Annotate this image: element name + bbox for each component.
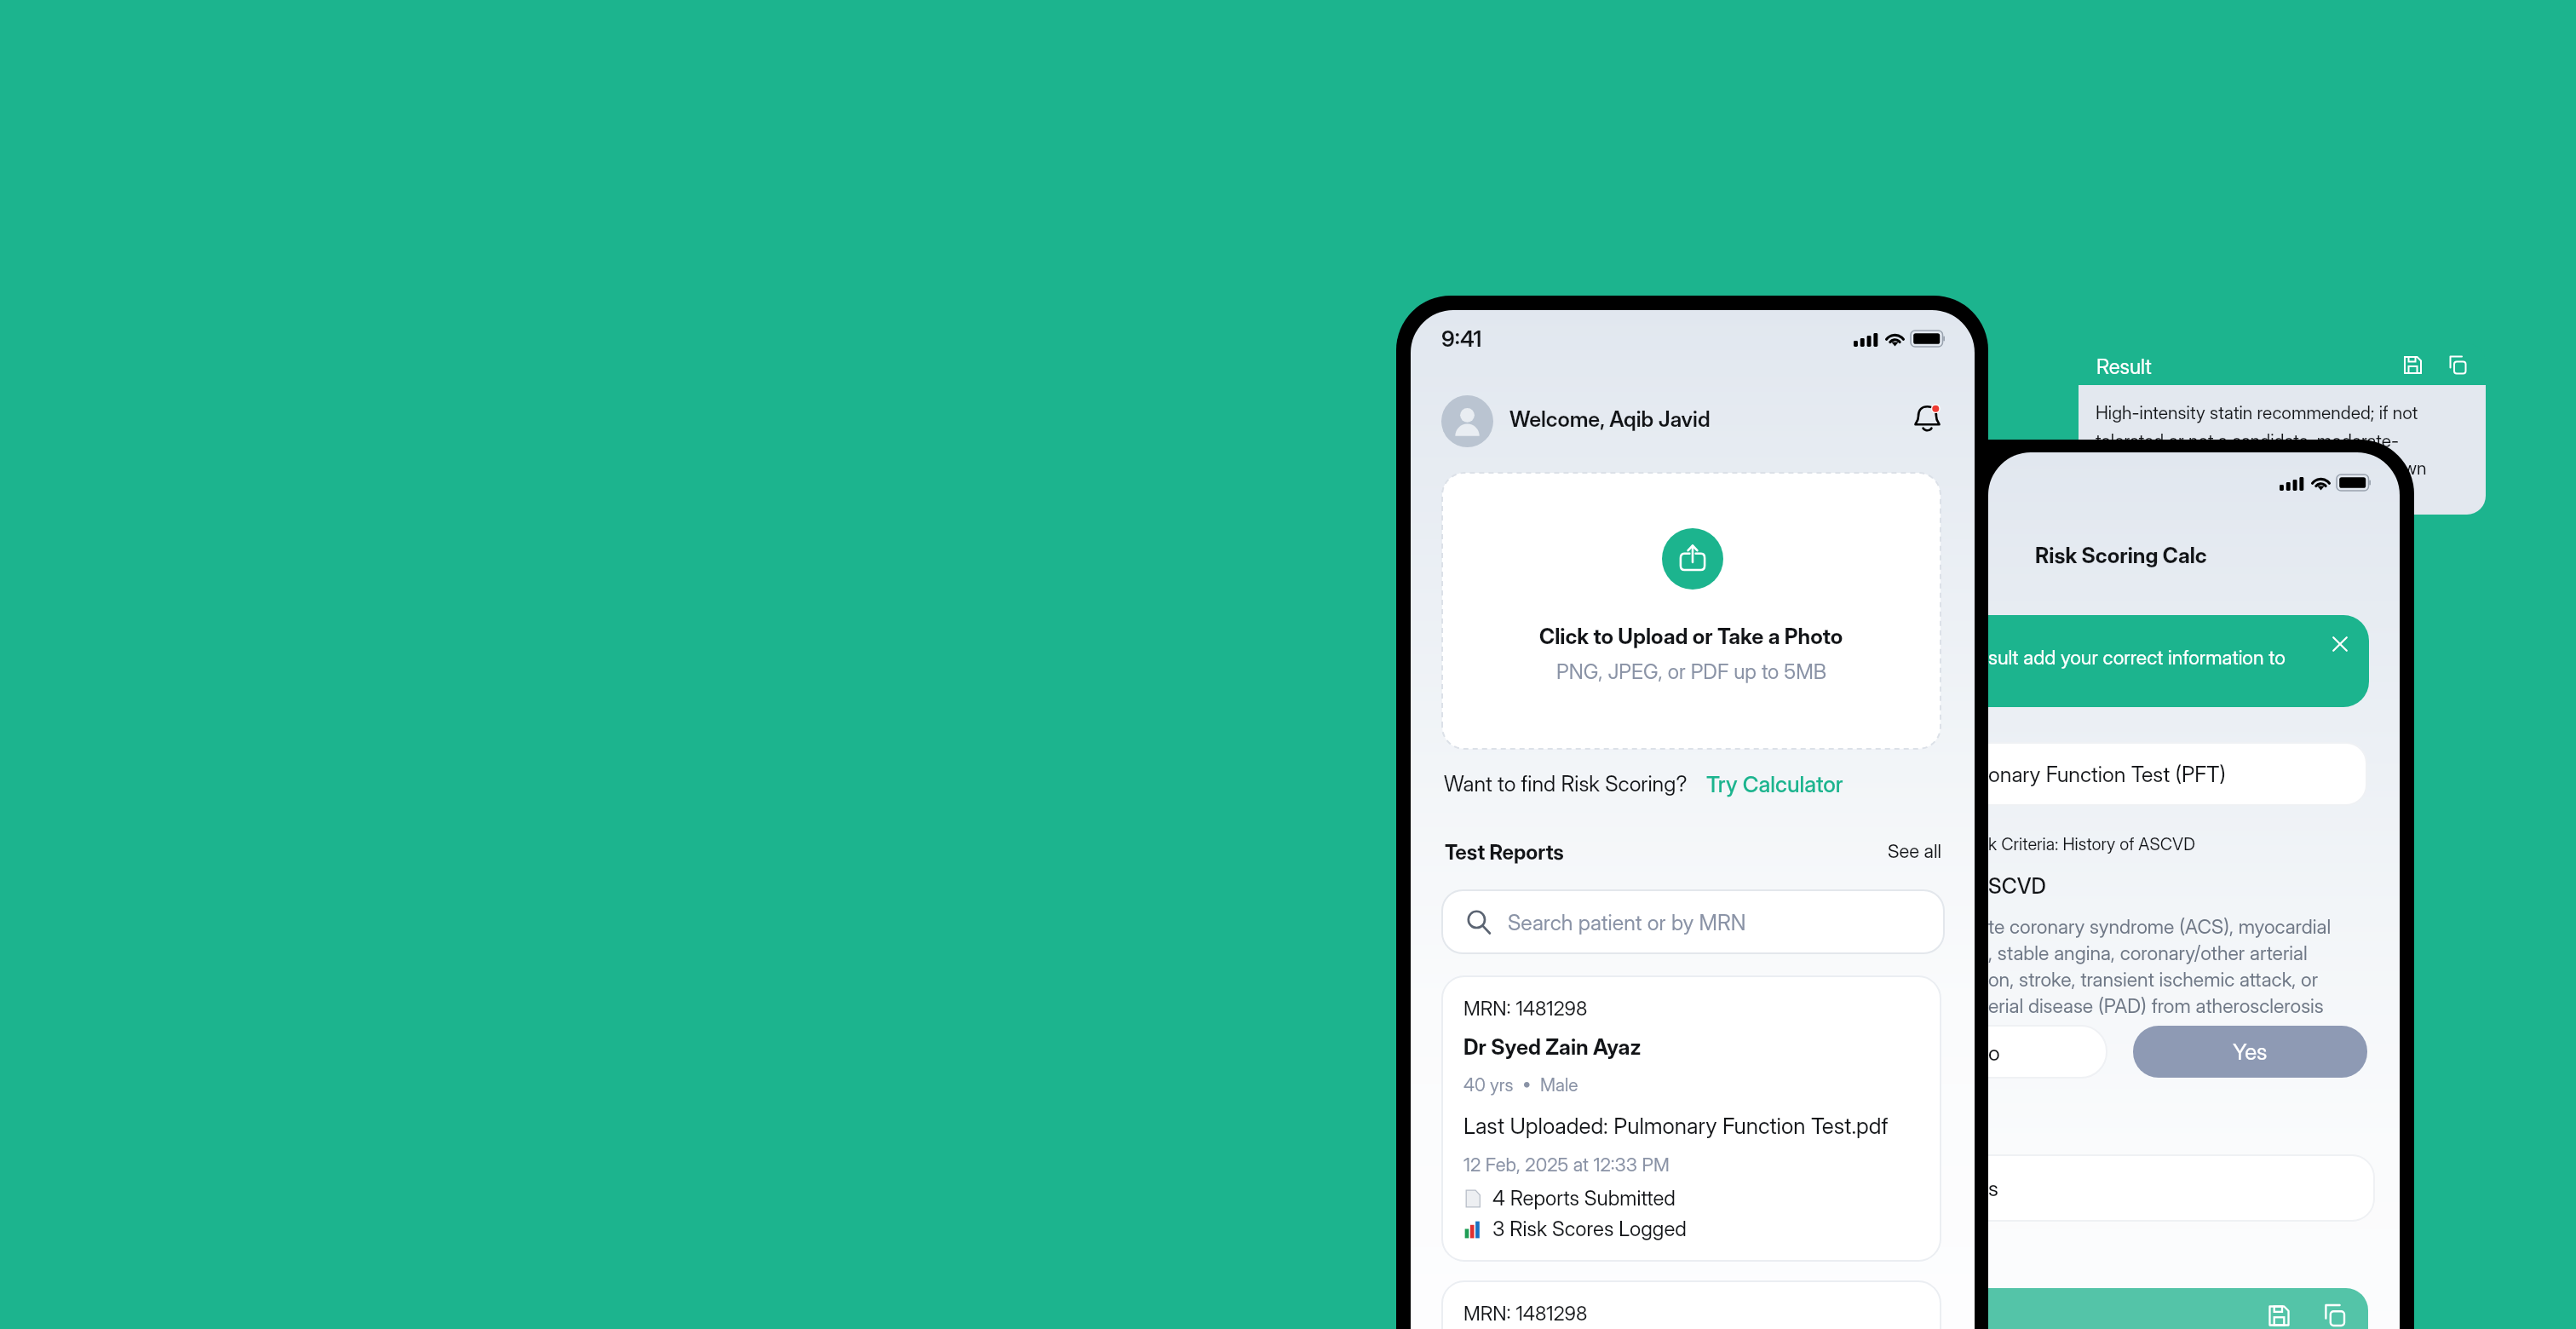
staticText: SCVD	[1988, 873, 2046, 899]
staticText: MRN: 1481298	[1463, 997, 1588, 1021]
button[interactable]: MRN: 1481298	[1442, 976, 1941, 1261]
button[interactable]: Save	[2267, 1303, 2291, 1328]
button[interactable]: MRN: 1481298	[1442, 1281, 1941, 1329]
staticText: Last Uploaded: Pulmonary Function Test.p…	[1463, 1113, 1889, 1139]
staticText: Try Calculator	[1706, 771, 1843, 797]
button[interactable]: o	[1988, 1026, 2107, 1078]
button[interactable]: onary Function Test (PFT)	[1988, 743, 2400, 805]
staticText: Result	[2096, 354, 2152, 379]
button[interactable]: s	[1988, 1155, 2400, 1221]
staticText: onary Function Test (PFT)	[1988, 762, 2226, 787]
staticText: Test Reports	[1445, 840, 1564, 865]
staticText: o	[1988, 1040, 2000, 1066]
button[interactable]: See all	[1877, 830, 1952, 873]
staticText: Risk Scoring Calc	[2035, 543, 2207, 568]
button[interactable]: Click to Upload or Take a Photo	[1442, 473, 1941, 749]
staticText: k Criteria: History of ASCVD	[1988, 834, 2195, 854]
button[interactable]: sult add your correct information to	[1988, 615, 2400, 707]
staticText: See all	[1888, 840, 1942, 863]
staticText: Click to Upload or Take a Photo	[1539, 624, 1843, 649]
staticText: Welcome, Aqib Javid	[1509, 406, 1711, 432]
staticText: 4 Reports Submitted	[1492, 1186, 1676, 1211]
button[interactable]: Close	[2329, 633, 2351, 655]
button[interactable]: Notifications	[1912, 403, 1942, 433]
staticText: 12 Feb, 2025 at 12:33 PM	[1463, 1154, 1670, 1177]
staticText: Yes	[2233, 1038, 2268, 1065]
staticText: Dr Syed Zain Ayaz	[1463, 1034, 1642, 1060]
staticText: MRN: 1481298	[1463, 1302, 1588, 1326]
staticText: Search patient or by MRN	[1508, 910, 1746, 935]
staticText: High-intensity statin recommended; if no…	[2096, 402, 2427, 479]
staticText: 3 Risk Scores Logged	[1492, 1217, 1687, 1241]
button[interactable]: Copy	[2447, 354, 2468, 376]
button[interactable]: Try Calculator	[1698, 761, 1852, 808]
staticText: sult add your correct information to	[1988, 646, 2286, 670]
staticText: Want to find Risk Scoring?	[1444, 771, 1688, 797]
button[interactable]: Search patient or by MRN	[1442, 890, 1944, 953]
button[interactable]: Copy	[2321, 1303, 2347, 1328]
staticText: te coronary syndrome (ACS), myocardial ,…	[1988, 915, 2332, 1017]
staticText: 40 yrs • Male	[1463, 1074, 1578, 1096]
staticText: 9:41	[1441, 325, 1482, 352]
button[interactable]: Save	[2402, 354, 2424, 376]
button[interactable]: Yes	[2133, 1026, 2367, 1078]
staticText: PNG, JPEG, or PDF up to 5MB	[1556, 659, 1827, 684]
staticText: s	[1988, 1176, 1998, 1201]
